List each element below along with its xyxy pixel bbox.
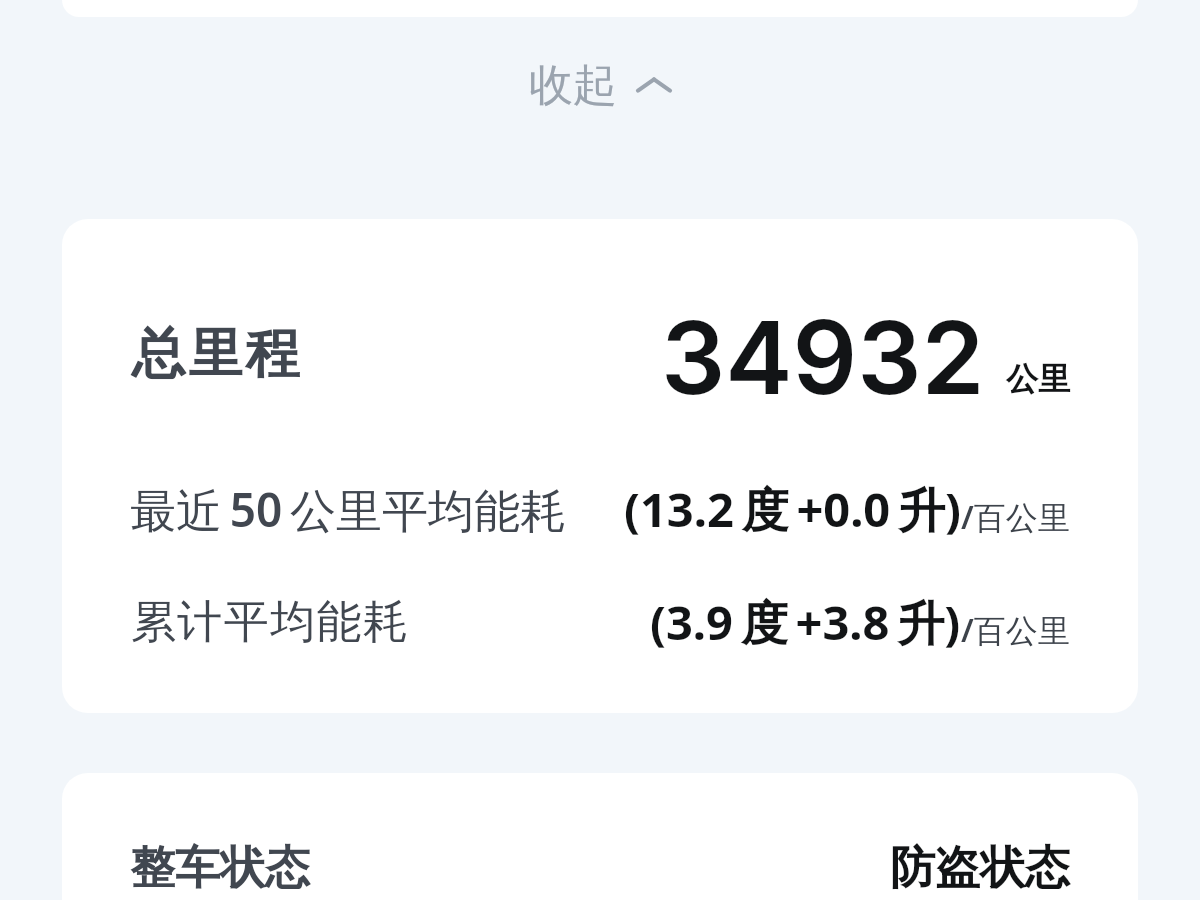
- staticText: 最近 50 公里平均能耗: [130, 478, 566, 541]
- staticText: 整车状态: [130, 840, 310, 897]
- staticText: 公里: [1006, 359, 1070, 399]
- button[interactable]: 最近 50 公里平均能耗: [62, 473, 1138, 545]
- staticText: /百公里: [961, 495, 1070, 539]
- staticText: 收起: [529, 58, 617, 113]
- other: Collapse: [636, 75, 672, 95]
- staticText: 总里程: [130, 320, 301, 388]
- button[interactable]: 总里程: [62, 296, 1138, 408]
- staticText: /百公里: [961, 608, 1070, 652]
- staticText: (3.9 度 +3.8 升): [650, 590, 961, 654]
- staticText: 防盗状态: [890, 840, 1070, 897]
- button[interactable]: 整车状态: [116, 830, 600, 900]
- staticText: 累计平均能耗: [130, 594, 409, 651]
- staticText: 34932: [661, 296, 985, 408]
- button[interactable]: 累计平均能耗: [62, 586, 1138, 658]
- button[interactable]: 防盗状态: [600, 830, 1084, 900]
- button[interactable]: 收起: [0, 50, 1200, 120]
- staticText: (13.2 度 +0.0 升): [624, 477, 961, 541]
